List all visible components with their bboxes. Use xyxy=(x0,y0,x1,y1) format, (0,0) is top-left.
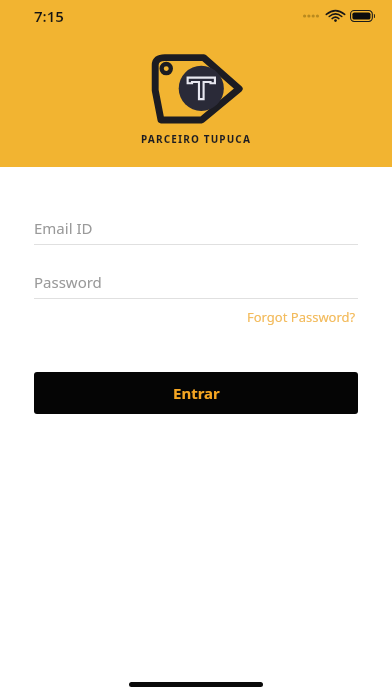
button[interactable]: Forgot Password? xyxy=(245,306,358,328)
other: Parceiro Tupuca logo xyxy=(148,50,244,126)
staticText: 7:15 xyxy=(34,6,64,26)
staticText: Password xyxy=(34,272,102,292)
button[interactable]: Entrar xyxy=(34,372,358,414)
staticText: Entrar xyxy=(173,383,220,403)
staticText: PARCEIRO TUPUCA xyxy=(141,132,252,146)
button[interactable]: Password xyxy=(34,270,358,299)
button[interactable]: Email ID xyxy=(34,216,358,245)
staticText: Email ID xyxy=(34,218,93,238)
staticText: Forgot Password? xyxy=(247,308,356,326)
